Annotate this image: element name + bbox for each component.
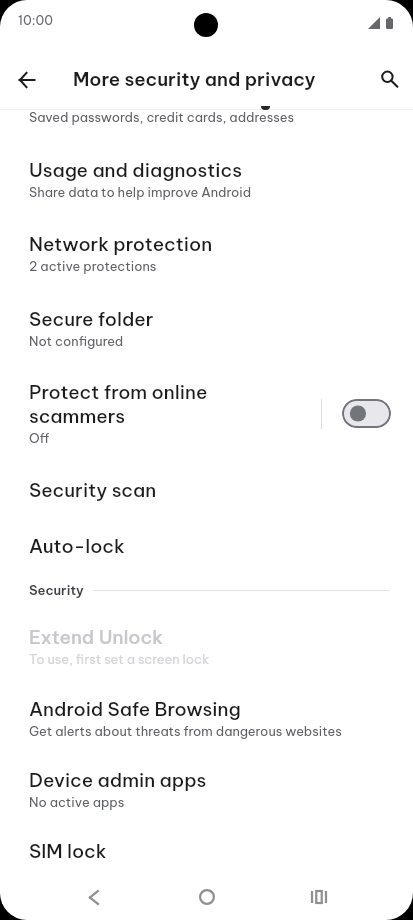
staticText: 10:00 — [18, 14, 54, 28]
button[interactable]: Protect from online scammers — [342, 399, 391, 428]
staticText: Device admin apps — [29, 768, 207, 792]
staticText: Extend Unlock — [29, 625, 163, 649]
button[interactable]: Auto-lock — [0, 517, 413, 573]
button[interactable]: Secure folder — [0, 290, 413, 365]
button[interactable]: Device admin apps — [0, 755, 413, 826]
staticText: More security and privacy — [73, 67, 316, 91]
staticText: Security — [29, 582, 84, 598]
staticText: No active apps — [29, 792, 125, 811]
button[interactable]: Usage and diagnostics — [0, 143, 413, 216]
button[interactable]: Home — [183, 873, 231, 920]
staticText: 2 active protections — [29, 256, 157, 275]
staticText: Secure folder — [29, 307, 154, 331]
staticText: Auto-lock — [29, 534, 125, 558]
button[interactable]: Security scan — [0, 462, 413, 517]
button[interactable]: Navigate up — [19, 72, 35, 88]
button[interactable]: Protect from online scammers — [0, 365, 413, 462]
button[interactable]: Network protection — [0, 216, 413, 290]
button[interactable]: Recent apps — [295, 873, 343, 920]
staticText: Protect from online scammers — [29, 380, 254, 428]
staticText: Saved passwords, credit cards, addresses — [29, 107, 294, 126]
staticText: Share data to help improve Android — [29, 182, 252, 201]
button[interactable]: SIM lock — [0, 826, 413, 878]
button[interactable]: Extend Unlock — [0, 611, 413, 683]
button[interactable]: Saved passwords, credit cards, addresses — [0, 102, 413, 143]
button[interactable]: Android Safe Browsing — [0, 683, 413, 755]
button[interactable]: Back — [70, 873, 118, 920]
staticText: Security scan — [29, 478, 157, 502]
button[interactable]: Search — [379, 68, 400, 89]
staticText: Usage and diagnostics — [29, 158, 242, 182]
staticText: SIM lock — [29, 839, 107, 863]
staticText: To use, first set a screen lock — [29, 649, 210, 668]
staticText: Off — [29, 428, 50, 447]
staticText: Network protection — [29, 232, 213, 256]
staticText: Not configured — [29, 331, 124, 350]
staticText: Get alerts about threats from dangerous … — [29, 721, 342, 740]
staticText: Android Safe Browsing — [29, 697, 241, 721]
